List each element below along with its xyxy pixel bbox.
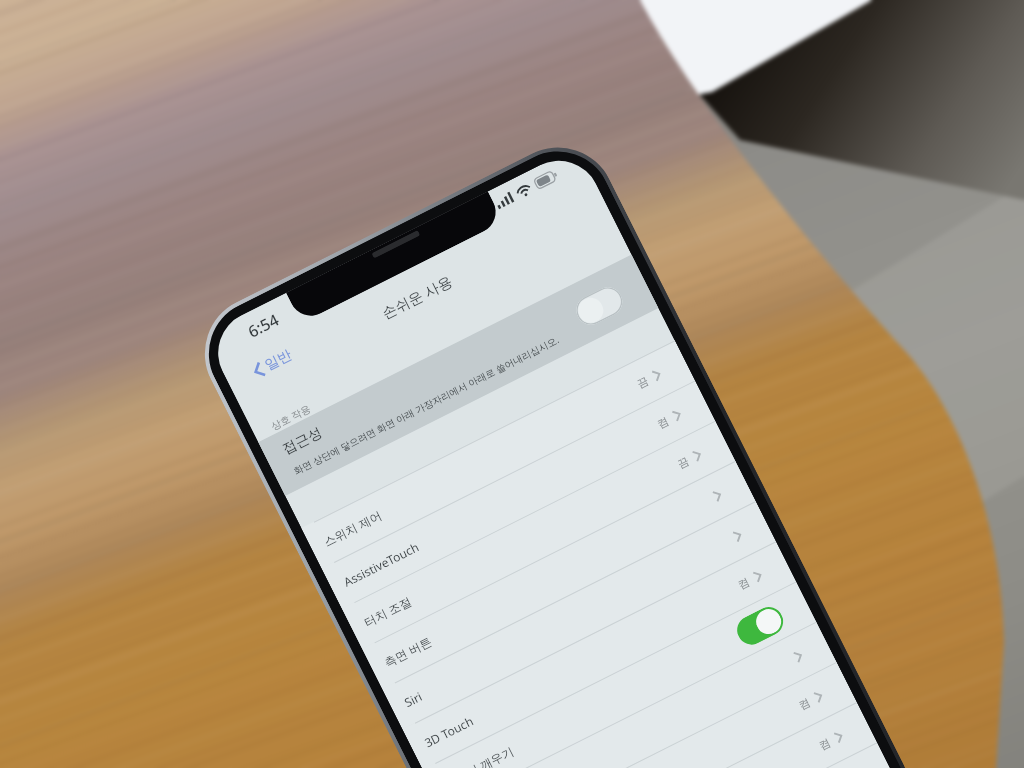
staticText: 측면 버튼 bbox=[381, 632, 435, 670]
button[interactable]: Toggle off bbox=[571, 282, 627, 330]
button[interactable]: Siri bbox=[382, 501, 776, 729]
button[interactable]: 터치 조절 bbox=[342, 421, 735, 649]
staticText: 일반 bbox=[262, 346, 295, 375]
staticText: 터치 조절 bbox=[361, 592, 415, 630]
staticText: 끔 bbox=[675, 454, 691, 471]
staticText: 켬 bbox=[796, 695, 812, 712]
staticText: 끔 bbox=[635, 373, 651, 391]
button[interactable]: 측면 버튼 bbox=[362, 461, 756, 689]
staticText: 6:54 bbox=[244, 309, 282, 343]
staticText: 켬 bbox=[655, 414, 671, 431]
staticText: 3D Touch bbox=[422, 712, 476, 750]
button[interactable]: 단축키 bbox=[463, 662, 857, 768]
staticText: 손쉬운 사용 bbox=[378, 270, 456, 323]
staticText: 화면 상단에 닿으려면 화면 아래 가장자리에서 아래로 쓸어내리십시오. bbox=[291, 333, 562, 477]
staticText: 접근성 bbox=[280, 424, 325, 459]
staticText: 흔들어 깨우기 bbox=[442, 742, 517, 768]
staticText: 상호 작용 bbox=[268, 401, 313, 433]
button[interactable]: AssistiveTouch bbox=[321, 380, 715, 608]
button[interactable]: Toggle on bbox=[732, 602, 788, 650]
button[interactable]: 3D Touch bbox=[402, 541, 796, 768]
staticText: 스위치 제어 bbox=[320, 506, 385, 549]
button[interactable]: 스위치 제어 bbox=[301, 340, 695, 568]
staticText: Siri bbox=[401, 688, 425, 710]
button[interactable]: 통화 오디오 라우팅 bbox=[443, 622, 836, 768]
button[interactable]: 손쉬운 사용 단축키 bbox=[503, 742, 897, 768]
staticText: 켬 bbox=[736, 574, 752, 592]
staticText: 켬 bbox=[816, 735, 833, 753]
button[interactable]: 흔들어 깨우기 bbox=[423, 581, 816, 768]
button[interactable]: 일반 bbox=[250, 346, 295, 381]
staticText: AssistiveTouch bbox=[341, 538, 421, 590]
button[interactable]: Guided Access bbox=[483, 702, 877, 768]
